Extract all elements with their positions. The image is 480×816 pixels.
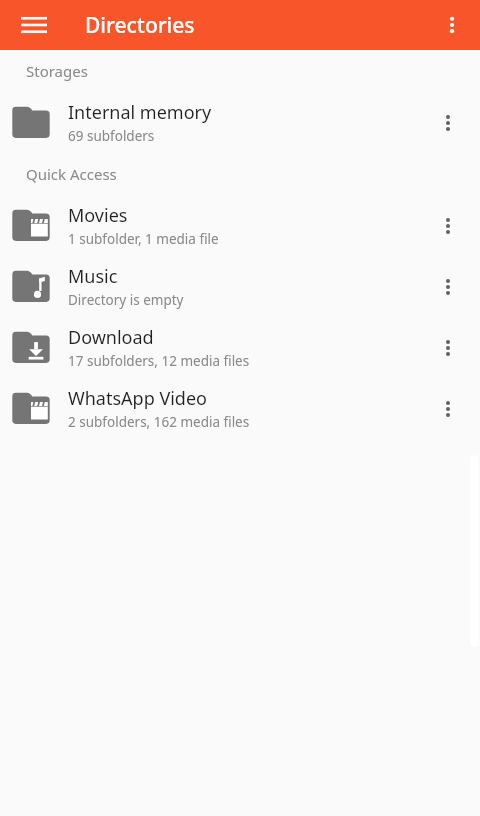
staticText: Music	[68, 264, 118, 289]
staticText: Directory is empty	[68, 291, 184, 309]
button[interactable]: More options for WhatsApp Video	[424, 385, 472, 433]
staticText: Directories	[85, 11, 195, 40]
button[interactable]: Download	[0, 317, 480, 378]
staticText: Download	[68, 325, 154, 350]
staticText: 69 subfolders	[68, 127, 155, 145]
button[interactable]: Music	[0, 256, 480, 317]
button[interactable]: More options for Movies	[424, 202, 472, 250]
button[interactable]: Internal memory	[0, 92, 480, 153]
staticText: Storages	[26, 61, 88, 81]
staticText: Quick Access	[26, 164, 117, 184]
staticText: 2 subfolders, 162 media files	[68, 413, 250, 431]
button[interactable]: More options	[428, 1, 476, 49]
staticText: 17 subfolders, 12 media files	[68, 352, 250, 370]
button[interactable]: More options for Download	[424, 324, 472, 372]
staticText: Movies	[68, 203, 128, 228]
button[interactable]: Movies	[0, 195, 480, 256]
staticText: Internal memory	[68, 100, 212, 125]
button[interactable]: Open navigation drawer	[10, 1, 58, 49]
button[interactable]: More options for Music	[424, 263, 472, 311]
staticText: 1 subfolder, 1 media file	[68, 230, 219, 248]
button[interactable]: More options for Internal memory	[424, 99, 472, 147]
staticText: WhatsApp Video	[68, 386, 207, 411]
button[interactable]: WhatsApp Video	[0, 378, 480, 439]
